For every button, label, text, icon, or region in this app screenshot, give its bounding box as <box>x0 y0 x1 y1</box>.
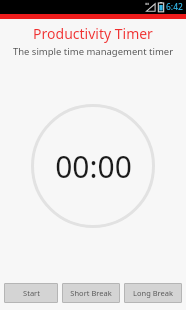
other: Mobile signal 3G <box>145 2 156 12</box>
button[interactable]: 00:00 <box>31 104 155 228</box>
staticText: The simple time management timer <box>0 45 186 58</box>
staticText: Productivity Timer <box>0 24 186 43</box>
staticText: 00:00 <box>55 146 132 187</box>
staticText: Long Break <box>133 288 173 298</box>
button[interactable]: Start <box>4 283 58 303</box>
button[interactable]: Short Break <box>62 283 120 303</box>
button[interactable]: Long Break <box>124 283 182 303</box>
staticText: 6:42 <box>166 1 183 13</box>
staticText: Short Break <box>70 288 112 298</box>
other: Battery <box>158 2 164 12</box>
staticText: Start <box>23 288 40 298</box>
